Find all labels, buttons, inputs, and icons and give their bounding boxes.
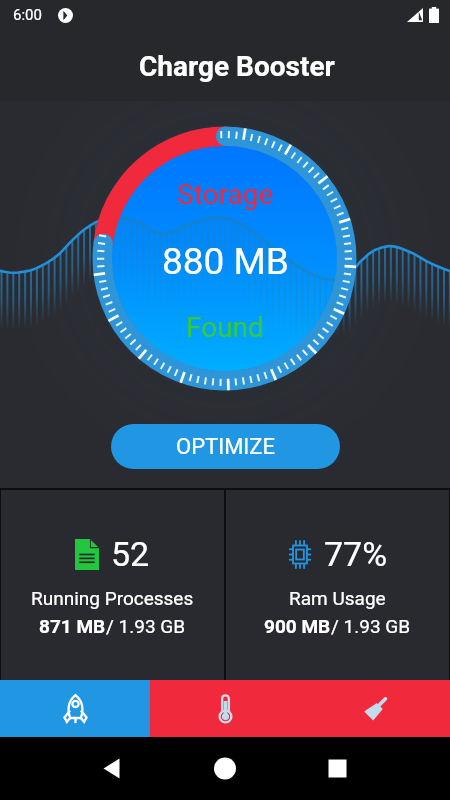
- staticText: Ram Usage: [289, 587, 386, 609]
- staticText: Storage: [177, 178, 274, 211]
- staticText: 871 MB: [39, 615, 106, 637]
- staticText: 900 MB: [264, 615, 331, 637]
- button[interactable]: CPU Cooler: [150, 680, 300, 737]
- button[interactable]: 52: [1, 490, 224, 680]
- staticText: 880 MB: [162, 240, 289, 283]
- button[interactable]: OPTIMIZE: [111, 424, 340, 469]
- staticText: 52: [111, 534, 150, 574]
- staticText: 6:00: [13, 6, 42, 24]
- button[interactable]: Clean: [300, 680, 450, 737]
- button[interactable]: Boost: [0, 680, 150, 737]
- staticText: / 1.93 GB: [106, 615, 186, 637]
- staticText: Running Processes: [31, 587, 194, 609]
- button[interactable]: 77%: [226, 490, 449, 680]
- staticText: Found: [186, 311, 264, 344]
- staticText: 77%: [324, 534, 388, 574]
- staticText: Charge Booster: [139, 50, 335, 83]
- staticText: OPTIMIZE: [176, 434, 275, 460]
- staticText: / 1.93 GB: [331, 615, 411, 637]
